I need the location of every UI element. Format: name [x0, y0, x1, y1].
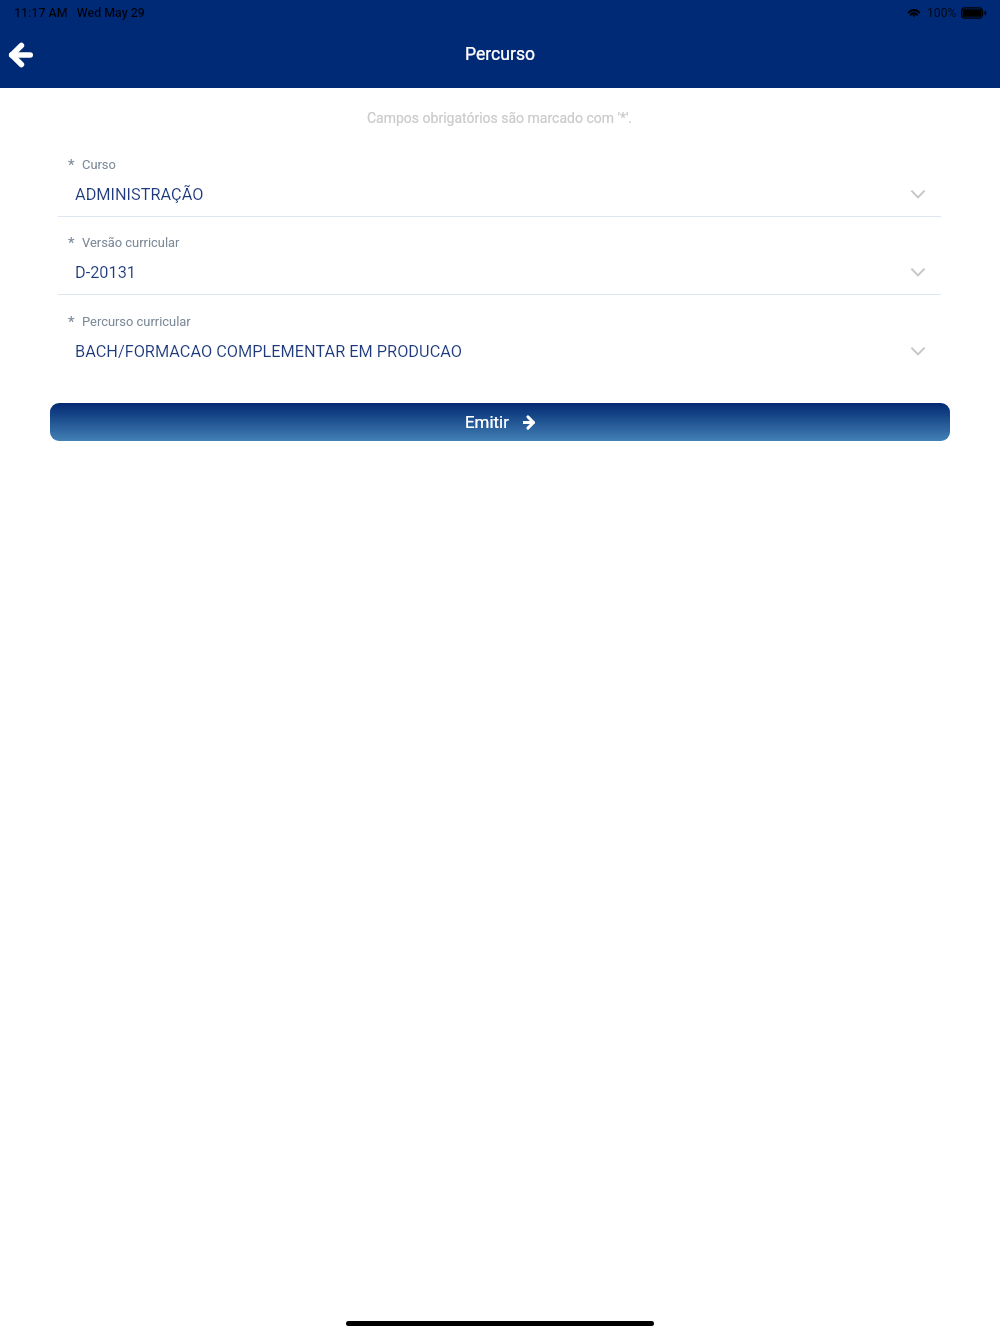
- staticText: BACH/FORMACAO COMPLEMENTAR EM PRODUCAO: [75, 342, 462, 361]
- button[interactable]: Percurso curricular: BACH/FORMACAO COMPL…: [50, 305, 950, 375]
- staticText: Versão curricular: [82, 235, 180, 250]
- staticText: Curso: [82, 157, 116, 172]
- staticText: 11:17 AM Wed May 29: [14, 5, 145, 20]
- staticText: *: [68, 156, 75, 174]
- staticText: Emitir: [465, 412, 509, 432]
- staticText: *: [68, 313, 75, 331]
- staticText: Campos obrigatórios são marcado com '*'.: [367, 110, 633, 126]
- staticText: 100%: [927, 6, 957, 20]
- staticText: ADMINISTRAÇÃO: [75, 185, 204, 204]
- staticText: *: [68, 234, 75, 252]
- button[interactable]: Emitir: [50, 403, 950, 441]
- staticText: Percurso curricular: [82, 314, 191, 329]
- staticText: D-20131: [75, 263, 136, 282]
- button[interactable]: Back: [0, 31, 45, 79]
- button[interactable]: Versão curricular: D-20131. Open list: [50, 226, 950, 296]
- button[interactable]: Curso: ADMINISTRAÇÃO. Open list: [50, 148, 950, 218]
- staticText: Percurso: [465, 44, 536, 65]
